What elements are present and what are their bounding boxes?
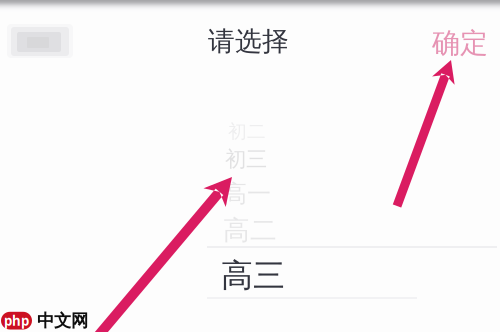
staticText: 初二 [228,120,266,143]
staticText: 请选择 [208,25,289,58]
button[interactable]: 取消 [7,24,73,58]
button[interactable]: 确定 [420,16,500,70]
staticText: 高三 [221,256,285,295]
staticText: php [4,312,29,329]
staticText: 高二 [223,214,277,247]
staticText: 初三 [225,146,267,172]
staticText: 确定 [432,26,488,60]
staticText: 高一 [223,179,271,208]
staticText: 中文网 [37,310,88,331]
